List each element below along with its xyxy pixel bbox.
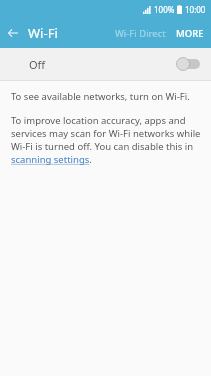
- staticText: 100%: [154, 4, 175, 15]
- staticText: MORE: [176, 27, 204, 40]
- staticText: Off: [29, 57, 46, 72]
- staticText: 10:00: [185, 4, 206, 15]
- staticText: Wi-Fi Direct: [115, 27, 166, 40]
- button[interactable]: Navigate up: [0, 20, 26, 46]
- staticText: To see available networks, turn on Wi-Fi…: [11, 90, 190, 103]
- staticText: To improve location accuracy, apps and s…: [11, 114, 201, 166]
- button[interactable]: Off: [0, 48, 211, 80]
- button[interactable]: To improve location accuracy, apps and s…: [11, 114, 201, 166]
- button[interactable]: Wi-Fi Direct: [111, 21, 170, 46]
- staticText: Wi-Fi: [28, 24, 58, 42]
- other: Wi-Fi toggle, off: [176, 57, 200, 71]
- button[interactable]: MORE: [170, 21, 211, 46]
